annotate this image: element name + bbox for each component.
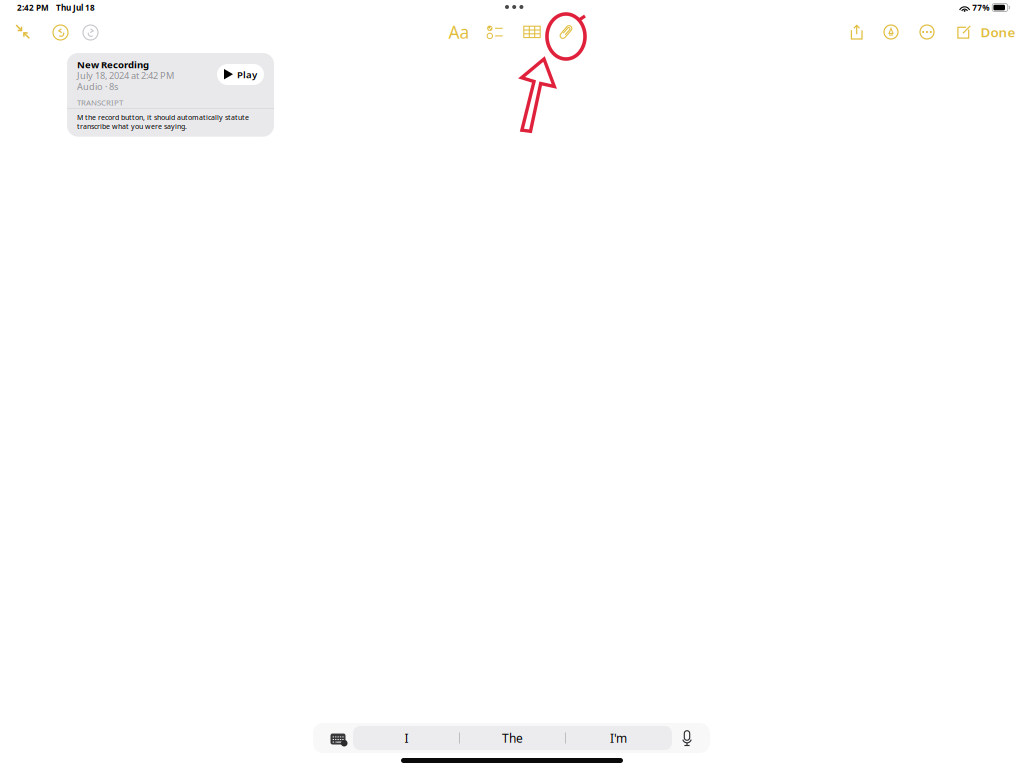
staticText: 77%	[972, 2, 989, 13]
button[interactable]: Format	[445, 18, 473, 46]
staticText: M the record button, it should automatic…	[77, 112, 249, 122]
button[interactable]: Keyboard	[325, 726, 351, 750]
button[interactable]: Undo	[47, 19, 75, 47]
button[interactable]: Play	[217, 64, 264, 85]
staticText: I'm	[610, 730, 627, 746]
button[interactable]: I	[354, 726, 459, 750]
button[interactable]: Table	[518, 18, 546, 46]
button[interactable]: New note	[950, 18, 978, 46]
staticText: Done	[980, 23, 1015, 41]
staticText: Thu Jul 18	[56, 2, 95, 13]
staticText: Audio · 8s	[77, 80, 118, 93]
staticText: New Recording	[77, 58, 149, 71]
button[interactable]: I'm	[566, 726, 671, 750]
staticText: Aa	[448, 20, 469, 43]
button[interactable]: Collapse sidebar	[8, 18, 38, 46]
staticText: Play	[237, 68, 257, 81]
button[interactable]: Markup	[877, 18, 905, 46]
staticText: transcribe what you were saying.	[77, 121, 187, 131]
button[interactable]: Dictate	[675, 726, 699, 750]
button[interactable]: Checklist	[481, 18, 509, 46]
button[interactable]: The	[460, 726, 565, 750]
button[interactable]: Share	[843, 18, 871, 46]
button[interactable]: More	[913, 18, 941, 46]
staticText: TRANSCRIPT	[77, 97, 123, 108]
staticText: July 18, 2024 at 2:42 PM	[77, 69, 174, 82]
button[interactable]: Redo	[77, 19, 105, 47]
staticText: The	[502, 730, 523, 746]
staticText: I	[404, 730, 408, 746]
staticText: 2:42 PM	[17, 2, 49, 13]
button[interactable]: Done	[982, 18, 1014, 46]
button[interactable]: Attach	[552, 18, 580, 46]
